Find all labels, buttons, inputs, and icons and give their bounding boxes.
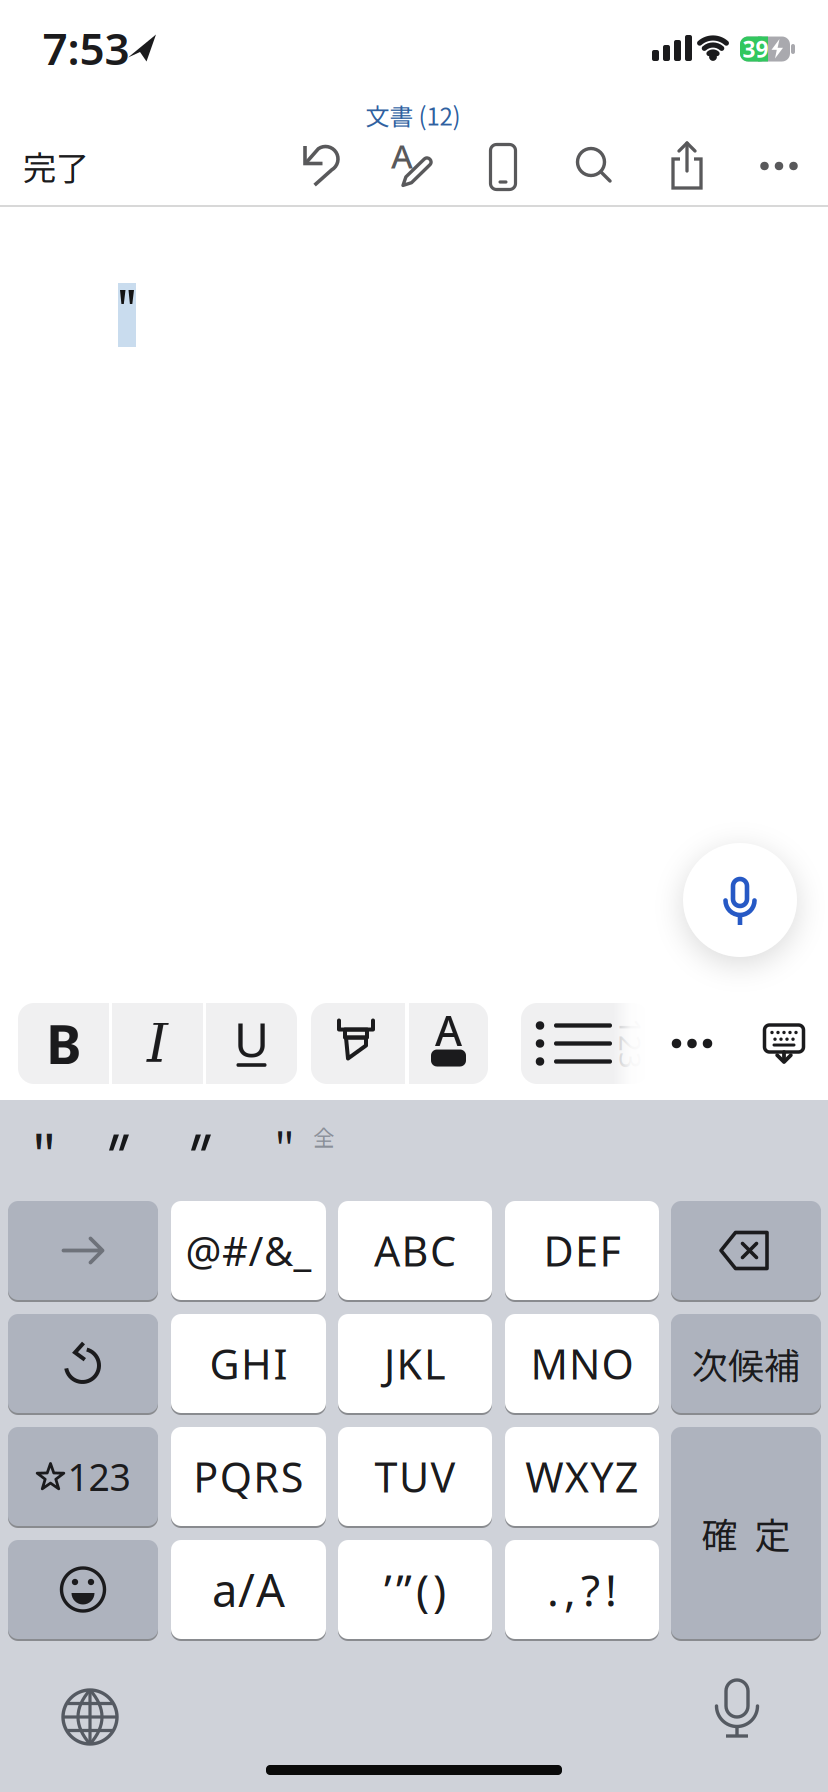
staticText: .,?! (547, 1560, 617, 1619)
button[interactable]: 検索 (563, 134, 627, 198)
staticText: ＂ (266, 1121, 303, 1175)
staticText: 次候補 (692, 1337, 800, 1389)
button[interactable]: ” (171, 1115, 231, 1171)
button[interactable]: ＂ (255, 1120, 345, 1176)
staticText: " (31, 1113, 56, 1191)
button[interactable]: .,?! (505, 1540, 659, 1641)
button[interactable]: ABC (338, 1201, 492, 1302)
button[interactable]: 完了 (6, 136, 106, 196)
button[interactable]: その他 (747, 134, 811, 198)
button[interactable]: 斜体 (112, 1003, 203, 1084)
button[interactable]: GHI (171, 1314, 326, 1415)
button[interactable]: 記号と数字 (8, 1427, 158, 1528)
staticText: PQRS (193, 1449, 304, 1504)
button[interactable]: “ (89, 1115, 149, 1171)
button[interactable]: ’”() (338, 1540, 492, 1641)
staticText: JKL (384, 1336, 446, 1391)
staticText: ABC (374, 1223, 456, 1278)
button[interactable]: フォントの色 (409, 1003, 488, 1084)
button[interactable]: 共有 (655, 134, 719, 198)
staticText: a/A (212, 1559, 285, 1620)
button[interactable]: その他の書式 (664, 1011, 720, 1075)
button[interactable]: MNO (505, 1314, 659, 1415)
button[interactable]: 箇条書き (521, 1003, 649, 1084)
staticText: 123 (605, 1024, 656, 1063)
staticText: 確定 (701, 1507, 790, 1559)
staticText: WXYZ (525, 1449, 639, 1504)
button[interactable]: 削除 (671, 1201, 821, 1302)
button[interactable]: 次のキーボード (60, 1687, 120, 1747)
staticText: DEF (543, 1223, 620, 1278)
staticText: 7:53 (42, 19, 129, 77)
button[interactable]: 元に戻す (288, 134, 352, 198)
button[interactable]: TUV (338, 1427, 492, 1528)
staticText: U (234, 1007, 269, 1071)
staticText: 文書 (12) (365, 98, 460, 132)
button[interactable]: JKL (338, 1314, 492, 1415)
button[interactable]: 蛍光ペン (311, 1003, 405, 1084)
button[interactable]: 音声入力 (713, 1678, 761, 1740)
button[interactable]: 次候補 (671, 1314, 821, 1415)
button[interactable]: カーソル移動 (8, 1201, 158, 1302)
button[interactable]: 太字 (18, 1003, 109, 1084)
staticText: @#/&_ (185, 1224, 311, 1277)
button[interactable]: 元に戻す (8, 1314, 158, 1415)
staticText: I (147, 1012, 168, 1075)
button[interactable]: モバイル表示 (471, 134, 535, 198)
staticText: 全 (313, 1121, 334, 1152)
button[interactable]: WXYZ (505, 1427, 659, 1528)
staticText: B (46, 1008, 81, 1079)
button[interactable]: @#/&_ (171, 1201, 326, 1302)
staticText: TUV (374, 1449, 455, 1504)
staticText: A (435, 1003, 462, 1057)
staticText: A (391, 133, 413, 178)
staticText: GHI (209, 1336, 287, 1391)
button[interactable]: " (14, 1124, 74, 1180)
staticText: 完了 (23, 142, 89, 190)
button[interactable]: キーボードを閉じる (756, 1014, 812, 1074)
staticText: 123 (67, 1452, 130, 1501)
button[interactable]: DEF (505, 1201, 659, 1302)
staticText: MNO (530, 1336, 633, 1391)
button[interactable]: 下線 (206, 1003, 297, 1084)
button[interactable]: 確定 (671, 1427, 821, 1641)
button[interactable]: 文書 (12) (365, 98, 460, 132)
staticText: 39 (742, 34, 768, 64)
staticText: ’”() (384, 1560, 446, 1619)
button[interactable]: PQRS (171, 1427, 326, 1528)
button[interactable]: 絵文字 (8, 1540, 158, 1641)
button[interactable]: 音声入力 (683, 843, 797, 957)
button[interactable]: 書式 (379, 134, 443, 198)
button[interactable]: a/A (171, 1540, 326, 1641)
